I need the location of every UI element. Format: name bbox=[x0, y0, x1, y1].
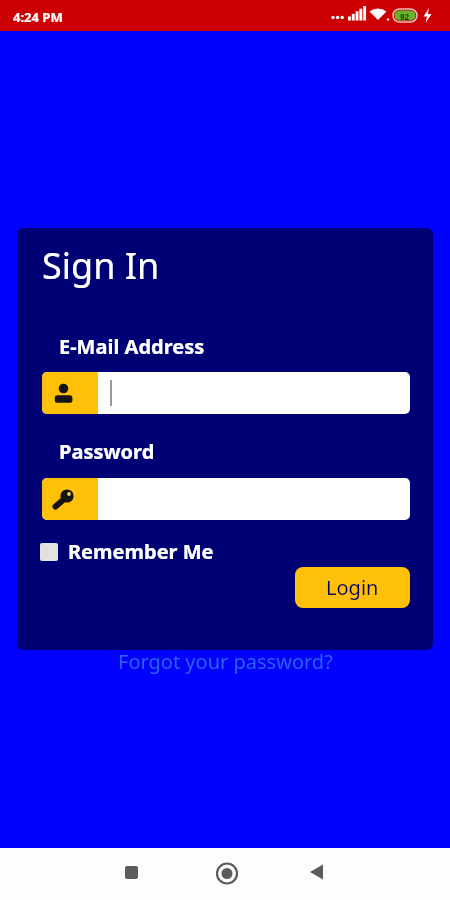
button[interactable]: Remember Me bbox=[40, 538, 214, 565]
button[interactable] bbox=[42, 372, 410, 414]
button[interactable] bbox=[150, 848, 300, 900]
staticText: Password bbox=[59, 438, 155, 465]
button[interactable] bbox=[0, 848, 150, 900]
staticText: Sign In bbox=[42, 241, 160, 290]
staticText: Login bbox=[326, 574, 379, 601]
staticText: Remember Me bbox=[68, 538, 214, 565]
button[interactable]: Forgot your password? bbox=[118, 648, 333, 675]
staticText: 4:24 PM bbox=[13, 8, 63, 26]
staticText: 92 bbox=[400, 11, 410, 22]
button[interactable]: Login bbox=[295, 567, 410, 608]
staticText: Forgot your password? bbox=[118, 648, 333, 675]
button[interactable] bbox=[42, 478, 410, 520]
staticText: E-Mail Address bbox=[59, 333, 205, 360]
button[interactable] bbox=[300, 848, 450, 900]
